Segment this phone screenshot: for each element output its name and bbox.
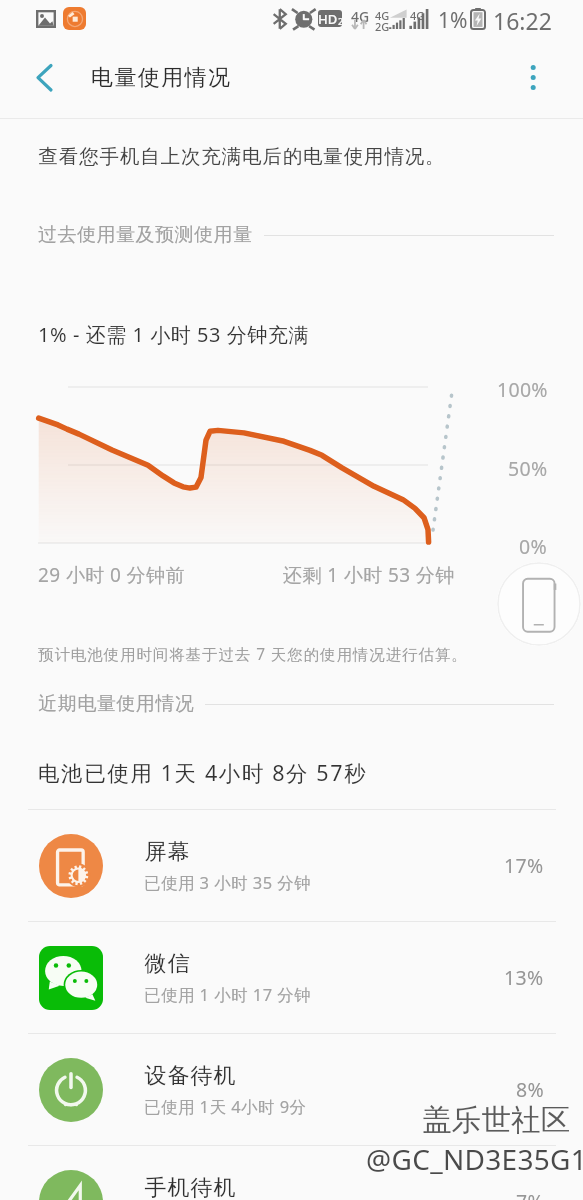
staticText: 近期电量使用情况	[38, 692, 194, 716]
staticText: 4G	[410, 8, 425, 23]
staticText: 已使用 3 小时 35 分钟	[144, 871, 312, 894]
button[interactable]: Device battery detail	[497, 562, 581, 646]
staticText: 50%	[508, 455, 548, 482]
staticText: 1%	[438, 6, 468, 35]
staticText: 2	[338, 15, 342, 27]
staticText: 电量使用情况	[91, 64, 232, 92]
staticText: 屏幕	[144, 838, 190, 866]
button[interactable]: More options	[509, 54, 557, 102]
staticText: @GC_ND3E35G1	[366, 1140, 583, 1178]
staticText: 4G	[351, 7, 370, 26]
staticText: 过去使用量及预测使用量	[38, 223, 253, 247]
staticText: 16:22	[493, 5, 552, 36]
button[interactable]: 手机待机	[0, 1146, 583, 1200]
staticText: 设备待机	[144, 1062, 236, 1090]
staticText: 预计电池使用时间将基于过去 7 天您的使用情况进行估算。	[38, 643, 468, 664]
staticText: 29 小时 0 分钟前	[38, 562, 185, 588]
staticText: 4G	[375, 8, 390, 23]
staticText: 17%	[504, 852, 544, 879]
staticText: 8%	[516, 1076, 544, 1103]
button[interactable]: 屏幕	[0, 810, 583, 921]
staticText: 2G	[375, 19, 390, 34]
staticText: 13%	[504, 964, 544, 991]
staticText: 电池已使用 1天 4小时 8分 57秒	[38, 758, 368, 787]
staticText: 0%	[519, 533, 547, 560]
staticText: 7%	[516, 1188, 544, 1200]
staticText: 1% - 还需 1 小时 53 分钟充满	[38, 321, 310, 348]
staticText: 100%	[497, 376, 548, 403]
staticText: 微信	[144, 950, 190, 978]
staticText: 已使用 1天 4小时 9分	[144, 1095, 307, 1118]
staticText: 盖乐世社区	[422, 1102, 571, 1139]
button[interactable]: 微信	[0, 922, 583, 1033]
staticText: 查看您手机自上次充满电后的电量使用情况。	[38, 144, 445, 169]
staticText: 已使用 1 小时 17 分钟	[144, 983, 312, 1006]
button[interactable]: Back	[20, 54, 68, 102]
staticText: HD	[318, 10, 338, 27]
button[interactable]: 设备待机	[0, 1034, 583, 1145]
staticText: 手机待机	[144, 1174, 236, 1200]
staticText: 还剩 1 小时 53 分钟	[283, 562, 455, 588]
